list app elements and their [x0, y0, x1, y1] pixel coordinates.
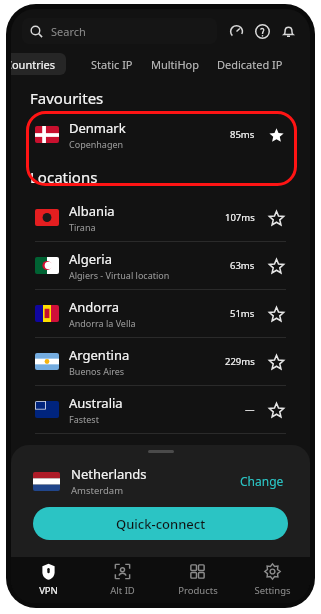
staticText: Locations — [30, 167, 98, 187]
staticText: Static IP — [91, 57, 133, 72]
button[interactable]: Remove favourite — [266, 125, 286, 145]
staticText: Alt ID — [110, 584, 135, 597]
button[interactable]: Alt ID — [85, 557, 160, 603]
button[interactable]: Settings — [235, 557, 310, 603]
staticText: MultiHop — [151, 57, 199, 72]
button[interactable]: Products — [160, 557, 235, 603]
button[interactable]: Change — [236, 469, 288, 493]
staticText: VPN — [39, 584, 58, 597]
button[interactable]: Notifications — [277, 20, 299, 42]
button[interactable]: Search — [22, 18, 217, 44]
staticText: 107ms — [225, 211, 255, 224]
button[interactable]: Add favourite — [266, 208, 286, 228]
button[interactable]: Argentina — [11, 338, 310, 385]
staticText: Australia — [69, 394, 123, 412]
button[interactable]: Australia — [11, 386, 310, 433]
staticText: Andorra — [69, 298, 119, 316]
button[interactable]: Speed test — [225, 20, 247, 42]
staticText: 51ms — [230, 307, 255, 320]
staticText: Products — [178, 584, 218, 597]
staticText: 85ms — [230, 128, 255, 141]
button[interactable]: Static IP — [82, 53, 142, 75]
staticText: Settings — [254, 584, 291, 597]
staticText: Favourites — [30, 88, 104, 108]
button[interactable]: Quick-connect — [33, 507, 288, 540]
staticText: Buenos Aires — [69, 365, 125, 377]
button[interactable]: MultiHop — [142, 53, 208, 75]
button[interactable]: Dedicated IP — [208, 53, 292, 75]
staticText: Countries — [11, 57, 56, 72]
staticText: Fastest — [69, 413, 99, 425]
button[interactable]: Add favourite — [266, 352, 286, 372]
staticText: Albania — [69, 202, 115, 220]
button[interactable]: Add favourite — [266, 256, 286, 276]
staticText: Dedicated IP — [217, 57, 283, 72]
staticText: Andorra la Vella — [69, 317, 136, 329]
staticText: Argentina — [69, 346, 130, 364]
staticText: Quick-connect — [116, 515, 206, 533]
button[interactable]: Add favourite — [266, 400, 286, 420]
button[interactable]: VPN — [11, 557, 85, 603]
staticText: 229ms — [225, 355, 255, 368]
staticText: Copenhagen — [69, 138, 124, 150]
staticText: — — [245, 403, 255, 416]
staticText: Algeria — [69, 250, 113, 268]
button[interactable]: Denmark — [11, 111, 310, 158]
button[interactable]: Countries — [11, 53, 66, 75]
staticText: Search — [51, 24, 86, 39]
staticText: Tirana — [69, 221, 96, 233]
button[interactable]: Algeria — [11, 242, 310, 289]
staticText: Algiers - Virtual location — [69, 269, 170, 281]
staticText: Change — [240, 473, 284, 489]
button[interactable]: Andorra — [11, 290, 310, 337]
staticText: Netherlands — [71, 465, 147, 483]
staticText: 63ms — [230, 259, 255, 272]
staticText: Amsterdam — [71, 484, 124, 497]
button[interactable]: Help — [251, 20, 273, 42]
button[interactable]: Add favourite — [266, 304, 286, 324]
button[interactable]: Albania — [11, 194, 310, 241]
staticText: Denmark — [69, 119, 126, 137]
